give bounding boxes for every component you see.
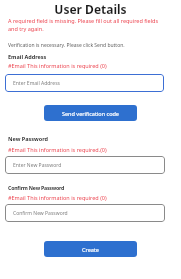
staticText: New Password [8, 135, 48, 142]
staticText: Confirm New Password [13, 210, 68, 217]
staticText: A required field is missing. Please fill… [8, 17, 159, 33]
button[interactable]: Enter Email Address [5, 74, 164, 92]
staticText: #Email This information is required (0) [8, 62, 107, 69]
staticText: Confirm New Password [8, 184, 65, 191]
staticText: Create [82, 246, 99, 253]
button[interactable]: Send verification code [44, 105, 137, 121]
staticText: Enter Email Address [13, 80, 60, 87]
staticText: User Details [0, 1, 181, 17]
staticText: #Email This information is required.(0) [8, 146, 107, 153]
button[interactable]: Create [44, 241, 137, 257]
staticText: Email Address [8, 53, 47, 60]
button[interactable]: Enter New Password [5, 156, 165, 174]
button[interactable]: Confirm New Password [5, 204, 165, 222]
staticText: Verification is necessary. Please click … [8, 42, 125, 49]
staticText: Enter New Password [13, 162, 62, 169]
staticText: #Email This information is required (0) [8, 194, 107, 201]
staticText: Send verification code [62, 110, 119, 117]
